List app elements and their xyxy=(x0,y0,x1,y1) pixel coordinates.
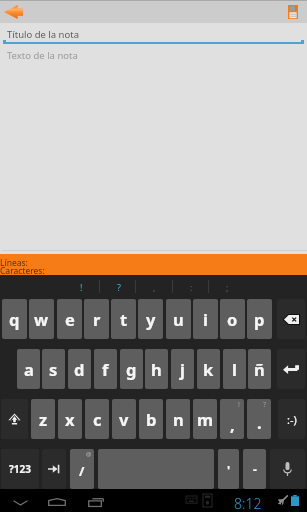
button[interactable]: n xyxy=(166,399,190,439)
button[interactable]: u xyxy=(166,299,191,339)
button[interactable]: p xyxy=(247,299,272,339)
button[interactable]: l xyxy=(223,349,246,389)
staticText: d xyxy=(74,358,85,380)
button[interactable]: . xyxy=(247,399,271,439)
button[interactable]: ? xyxy=(100,276,137,297)
button[interactable]: v xyxy=(112,399,136,439)
staticText: ? xyxy=(117,281,121,293)
staticText: : xyxy=(190,281,193,293)
staticText: m xyxy=(197,408,214,430)
staticText: k xyxy=(203,358,214,380)
staticText: 8:12 xyxy=(234,494,262,512)
staticText: . xyxy=(257,411,262,433)
staticText: i xyxy=(203,308,208,330)
button[interactable]: Emoji xyxy=(278,399,305,439)
staticText: / xyxy=(79,462,85,480)
staticText: r xyxy=(93,308,101,330)
button[interactable]: : xyxy=(173,276,210,297)
button[interactable]: Voice input xyxy=(270,449,305,489)
button[interactable]: Recent apps xyxy=(83,491,109,511)
button[interactable]: ñ xyxy=(248,349,271,389)
button[interactable]: q xyxy=(2,299,27,339)
staticText: f xyxy=(102,358,109,380)
staticText: l xyxy=(232,358,237,380)
staticText: b xyxy=(146,408,157,430)
button[interactable]: c xyxy=(85,399,109,439)
button[interactable]: - xyxy=(243,449,266,489)
staticText: z xyxy=(39,408,48,430)
staticText: Título de la nota xyxy=(7,28,80,41)
button[interactable]: / xyxy=(70,449,94,489)
staticText: e xyxy=(65,308,75,330)
staticText: x xyxy=(65,408,75,430)
button[interactable]: o xyxy=(220,299,245,339)
staticText: j xyxy=(180,358,185,380)
staticText: ?123 xyxy=(9,462,31,476)
button[interactable]: Back xyxy=(7,491,33,511)
button[interactable]: y xyxy=(138,299,163,339)
staticText: w xyxy=(34,308,49,330)
staticText: , xyxy=(230,413,235,435)
button[interactable]: f xyxy=(94,349,117,389)
button[interactable]: t xyxy=(111,299,136,339)
staticText: :-) xyxy=(287,412,297,427)
staticText: g xyxy=(126,358,137,380)
staticText: y xyxy=(146,308,156,330)
button[interactable]: Backspace xyxy=(277,299,305,339)
button[interactable]: Título de la nota xyxy=(0,23,307,44)
staticText: - xyxy=(253,461,257,477)
staticText: p xyxy=(254,308,265,330)
button[interactable]: ! xyxy=(63,276,100,297)
button[interactable]: Home xyxy=(44,491,70,511)
button[interactable]: g xyxy=(120,349,143,389)
staticText: n xyxy=(173,408,184,430)
staticText: ! xyxy=(238,400,240,410)
button[interactable]: , xyxy=(136,276,173,297)
button[interactable]: e xyxy=(57,299,82,339)
button[interactable]: Enter xyxy=(277,349,305,389)
staticText: ñ xyxy=(254,358,265,380)
staticText: Texto de la nota xyxy=(7,49,78,62)
staticText: t xyxy=(120,308,128,330)
button[interactable]: i xyxy=(193,299,218,339)
staticText: ; xyxy=(226,281,229,293)
button[interactable]: s xyxy=(42,349,65,389)
button[interactable]: j xyxy=(171,349,194,389)
button[interactable]: Save note xyxy=(283,0,307,23)
staticText: Caracteres: xyxy=(0,265,45,277)
button[interactable]: d xyxy=(68,349,91,389)
staticText: ? xyxy=(263,400,267,410)
button[interactable]: ?123 xyxy=(1,449,39,489)
button[interactable]: , xyxy=(220,399,244,439)
staticText: s xyxy=(49,358,58,380)
staticText: ' xyxy=(227,462,231,478)
staticText: @ xyxy=(86,450,92,458)
button[interactable]: Shift xyxy=(1,399,28,439)
button[interactable]: Tab xyxy=(42,449,66,489)
staticText: , xyxy=(153,281,156,293)
button[interactable]: m xyxy=(193,399,217,439)
staticText: u xyxy=(173,308,184,330)
button[interactable]: ' xyxy=(218,449,239,489)
staticText: c xyxy=(93,408,102,430)
staticText: ! xyxy=(80,281,83,293)
staticText: a xyxy=(24,358,34,380)
button[interactable]: h xyxy=(145,349,168,389)
button[interactable]: r xyxy=(84,299,109,339)
staticText: h xyxy=(151,358,162,380)
button[interactable]: b xyxy=(139,399,163,439)
button[interactable]: w xyxy=(29,299,54,339)
button[interactable]: z xyxy=(31,399,55,439)
staticText: v xyxy=(119,408,129,430)
button[interactable]: x xyxy=(58,399,82,439)
button[interactable]: a xyxy=(17,349,40,389)
staticText: Líneas: xyxy=(0,257,28,269)
staticText: q xyxy=(9,308,20,330)
button[interactable]: k xyxy=(197,349,220,389)
button[interactable]: Back xyxy=(0,0,28,23)
staticText: o xyxy=(227,308,238,330)
